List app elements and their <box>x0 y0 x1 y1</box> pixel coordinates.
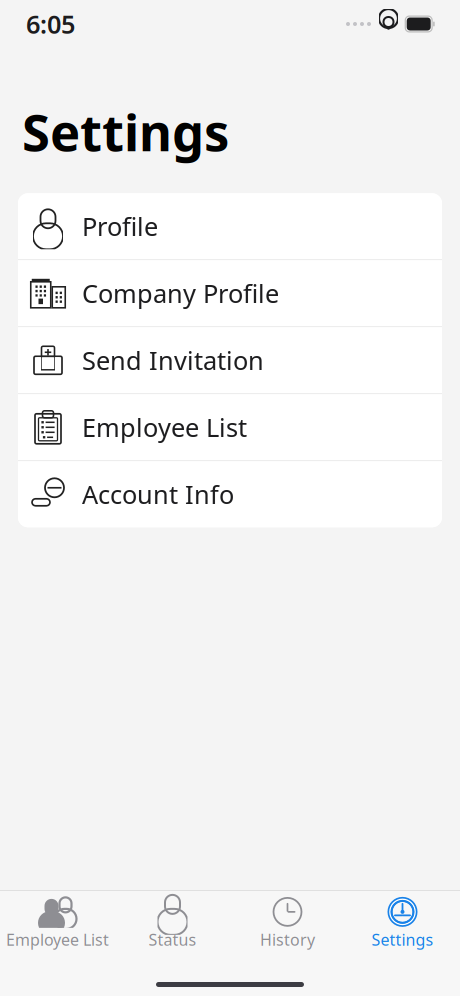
button[interactable]: History <box>230 888 345 956</box>
button[interactable]: Settings <box>345 888 460 956</box>
button[interactable]: Company Profile <box>18 260 442 327</box>
staticText: Employee List <box>82 410 247 444</box>
staticText: Settings <box>22 98 229 165</box>
button[interactable]: Account Info <box>18 461 442 527</box>
staticText: Send Invitation <box>82 343 264 377</box>
staticText: Company Profile <box>82 276 279 310</box>
staticText: History <box>260 929 315 950</box>
button[interactable]: Employee List <box>18 394 442 461</box>
button[interactable]: Send Invitation <box>18 327 442 394</box>
staticText: Account Info <box>82 477 234 511</box>
button[interactable]: Profile <box>18 193 442 260</box>
staticText: Settings <box>371 929 433 950</box>
staticText: Profile <box>82 209 158 243</box>
button[interactable]: Status <box>115 888 230 956</box>
staticText: Employee List <box>6 929 109 950</box>
button[interactable]: Employee List <box>0 888 115 956</box>
staticText: 6:05 <box>26 7 75 41</box>
staticText: Status <box>148 929 196 950</box>
